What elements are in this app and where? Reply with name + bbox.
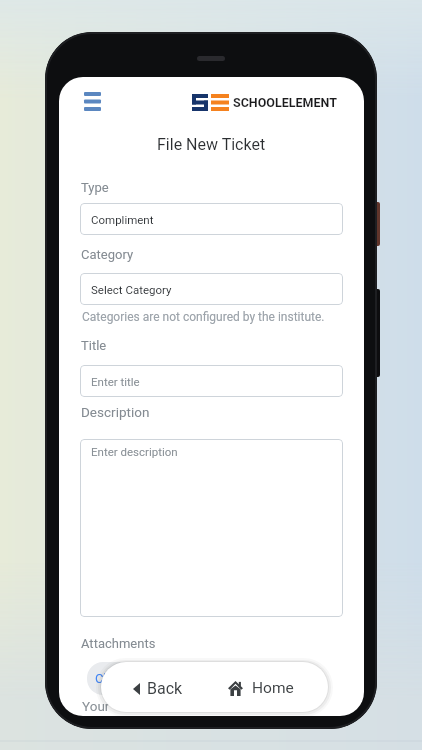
button[interactable]: Compliment bbox=[80, 203, 343, 235]
staticText: Title bbox=[81, 338, 107, 353]
button[interactable]: Enter description bbox=[80, 439, 343, 617]
staticText: Choose bbox=[95, 671, 140, 686]
button[interactable]: Enter title bbox=[80, 365, 343, 397]
staticText: Home bbox=[252, 679, 294, 697]
staticText: Back bbox=[147, 679, 183, 698]
button[interactable]: Choose bbox=[87, 662, 202, 695]
button[interactable]: Home bbox=[215, 664, 307, 712]
staticText: Enter title bbox=[91, 375, 140, 388]
staticText: Category bbox=[81, 247, 134, 262]
staticText: Enter description bbox=[91, 445, 178, 458]
staticText: Type bbox=[81, 180, 109, 195]
staticText: Select Category bbox=[91, 283, 172, 296]
staticText: Description bbox=[81, 404, 150, 420]
staticText: Categories are not configured by the ins… bbox=[82, 310, 325, 324]
button[interactable]: Back bbox=[113, 664, 203, 712]
button[interactable]: Select Category bbox=[80, 273, 343, 305]
button[interactable] bbox=[75, 84, 109, 118]
staticText: File New Ticket bbox=[157, 135, 266, 154]
staticText: SCHOOLELEMENT bbox=[233, 95, 337, 110]
staticText: Your bbox=[82, 698, 110, 714]
staticText: Compliment bbox=[91, 213, 154, 226]
staticText: Attachments bbox=[81, 636, 156, 651]
